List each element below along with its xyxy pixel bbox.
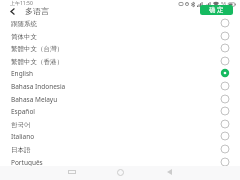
button[interactable]: 繁體中文（台灣） <box>0 41 240 54</box>
staticText: 多语言 <box>25 6 49 16</box>
button[interactable]: 日本語 <box>0 142 240 155</box>
button[interactable]: Español <box>0 104 240 117</box>
button[interactable]: Home <box>112 164 128 180</box>
staticText: Español <box>11 107 35 116</box>
button[interactable]: 简体中文 <box>0 29 240 42</box>
button[interactable]: Bahasa Indonesia <box>0 79 240 92</box>
staticText: 한국어 <box>11 121 31 129</box>
button[interactable]: 跟随系统 <box>0 16 240 29</box>
staticText: 跟随系统 <box>11 20 37 28</box>
button[interactable]: 确定 <box>200 5 233 15</box>
button[interactable]: Back <box>161 164 177 180</box>
button[interactable]: 한국어 <box>0 117 240 130</box>
button[interactable]: English <box>0 66 240 79</box>
staticText: 56 <box>221 1 227 7</box>
staticText: Bahasa Melayu <box>11 95 58 104</box>
staticText: 繁體中文（台灣） <box>11 45 63 53</box>
button[interactable]: 繁體中文（香港） <box>0 54 240 67</box>
staticText: Italiano <box>11 132 35 141</box>
staticText: 繁體中文（香港） <box>11 58 63 66</box>
staticText: 确定 <box>209 6 226 14</box>
staticText: 上午11:50 <box>10 0 33 7</box>
staticText: Português <box>11 158 43 167</box>
staticText: English <box>11 69 34 78</box>
button[interactable]: Back <box>5 4 19 18</box>
button[interactable]: Recents <box>64 164 80 180</box>
staticText: Bahasa Indonesia <box>11 82 66 91</box>
button[interactable]: Português <box>0 155 240 168</box>
button[interactable]: Bahasa Melayu <box>0 92 240 105</box>
staticText: 简体中文 <box>11 33 37 41</box>
button[interactable]: Italiano <box>0 129 240 142</box>
staticText: 日本語 <box>11 146 31 154</box>
